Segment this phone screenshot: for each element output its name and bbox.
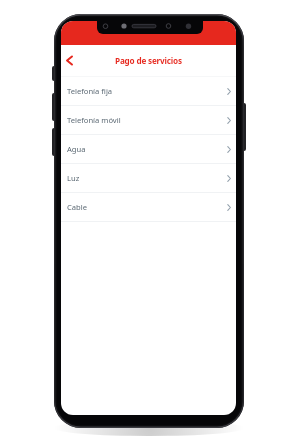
button[interactable]: Luz bbox=[61, 164, 236, 192]
button[interactable]: Cable bbox=[61, 193, 236, 221]
staticText: Agua bbox=[67, 144, 86, 154]
button[interactable]: Telefonía fija bbox=[61, 77, 236, 105]
staticText: Telefonía fija bbox=[67, 86, 113, 96]
staticText: Luz bbox=[67, 173, 80, 183]
button[interactable] bbox=[62, 45, 77, 76]
staticText: Pago de servicios bbox=[115, 55, 182, 66]
button[interactable]: Agua bbox=[61, 135, 236, 163]
button[interactable]: Telefonía móvil bbox=[61, 106, 236, 134]
staticText: Cable bbox=[67, 202, 87, 212]
staticText: Telefonía móvil bbox=[67, 115, 121, 125]
